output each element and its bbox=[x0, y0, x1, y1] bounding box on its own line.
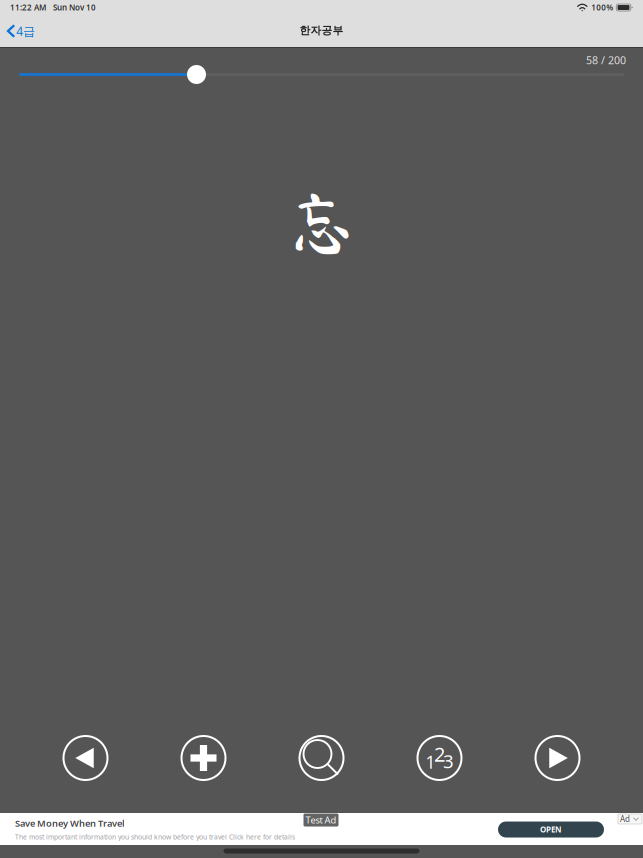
staticText: Test Ad bbox=[305, 814, 336, 826]
staticText: 100% bbox=[591, 2, 613, 13]
staticText: Ad bbox=[620, 814, 630, 824]
staticText: 4급 bbox=[16, 23, 35, 39]
button[interactable]: Search bbox=[287, 724, 355, 792]
button[interactable]: Previous bbox=[51, 724, 119, 792]
staticText: 3 bbox=[443, 749, 454, 773]
staticText: 한자공부 bbox=[299, 24, 343, 37]
staticText: 忘 bbox=[287, 187, 356, 257]
staticText: The most important information you shoul… bbox=[15, 832, 295, 841]
button[interactable]: OPEN bbox=[498, 821, 604, 837]
button[interactable]: Ad choices bbox=[618, 814, 642, 824]
staticText: 11:22 AM bbox=[10, 2, 46, 13]
button[interactable]: Add bbox=[169, 724, 237, 792]
staticText: Sun Nov 10 bbox=[53, 2, 96, 13]
staticText: 58 / 200 bbox=[586, 53, 626, 67]
staticText: 1 bbox=[425, 750, 435, 773]
staticText: Save Money When Travel bbox=[15, 817, 125, 829]
button[interactable]: Numbers bbox=[405, 724, 473, 792]
button[interactable]: Play bbox=[523, 724, 591, 792]
staticText: OPEN bbox=[540, 824, 562, 835]
staticText: 2 bbox=[434, 741, 445, 767]
button[interactable]: 4급 bbox=[8, 18, 52, 44]
